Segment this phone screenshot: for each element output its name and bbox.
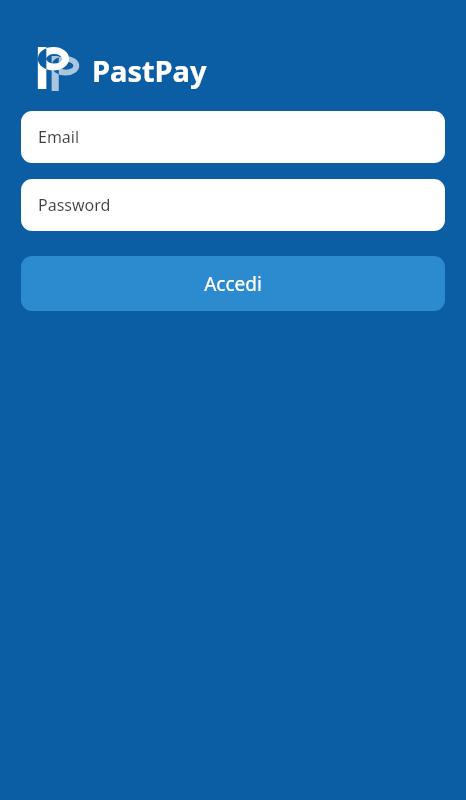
staticText: Password bbox=[38, 194, 111, 216]
staticText: Accedi bbox=[204, 271, 262, 297]
button[interactable]: Email bbox=[21, 111, 445, 163]
staticText: Email bbox=[38, 126, 80, 148]
other: PastPay logo bbox=[36, 45, 82, 95]
button[interactable]: Accedi bbox=[21, 256, 445, 311]
button[interactable]: Password bbox=[21, 179, 445, 231]
staticText: PastPay bbox=[92, 51, 207, 90]
